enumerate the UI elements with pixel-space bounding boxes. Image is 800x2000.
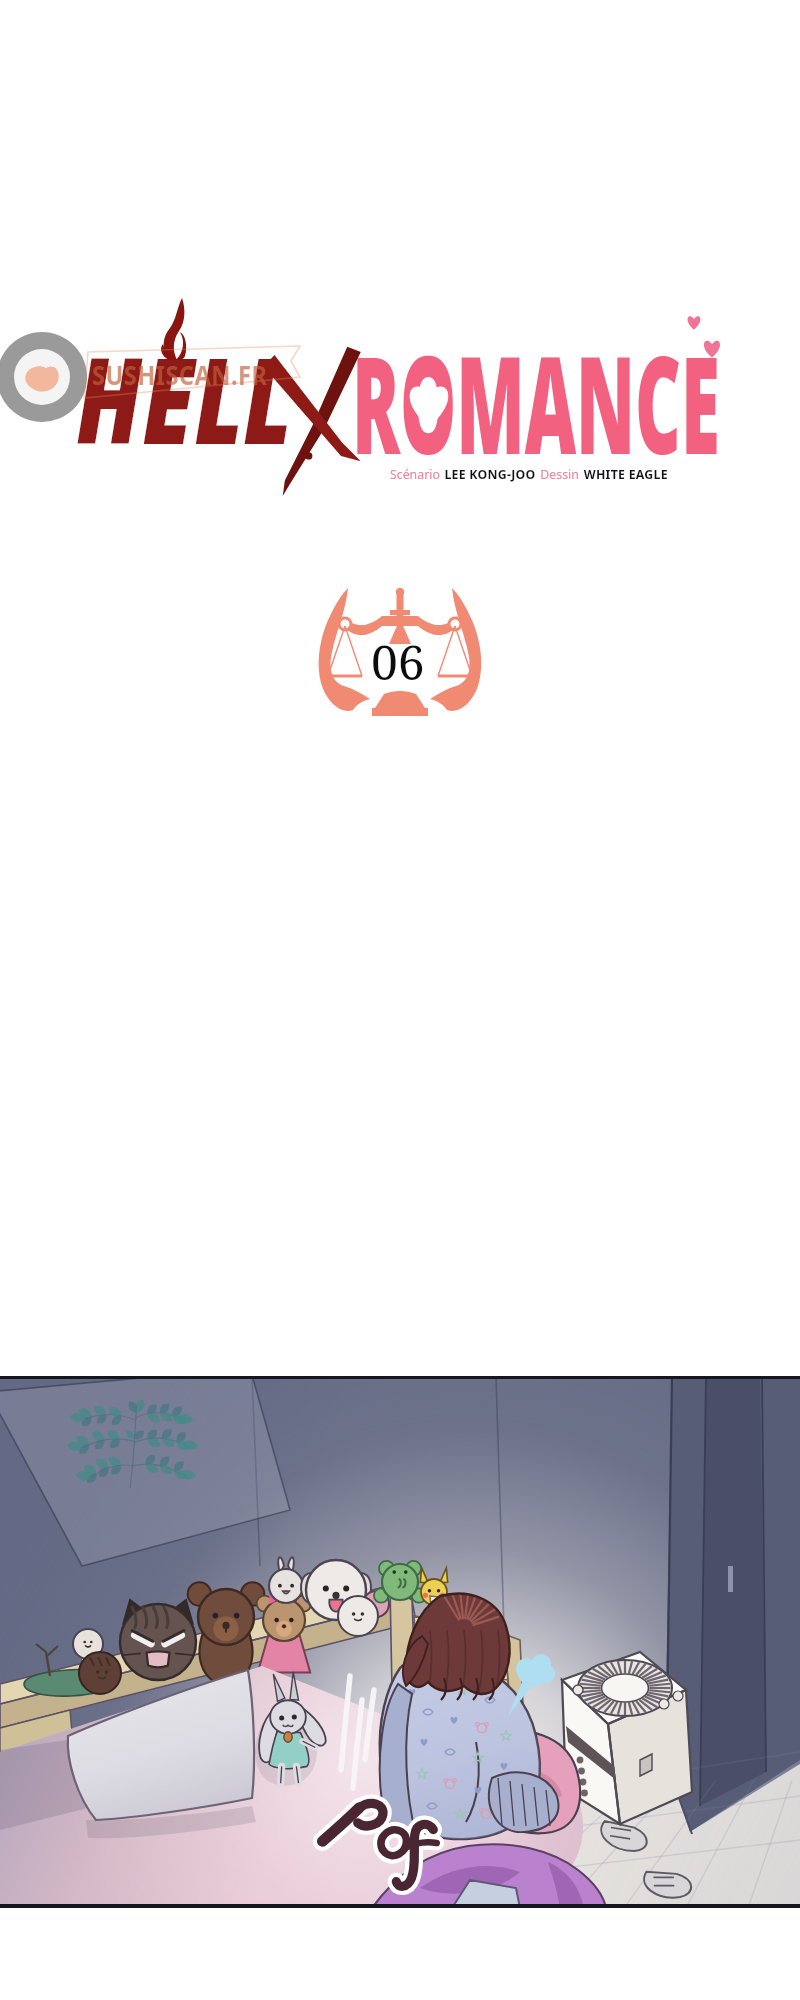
button[interactable]: [0, 0, 800, 2000]
